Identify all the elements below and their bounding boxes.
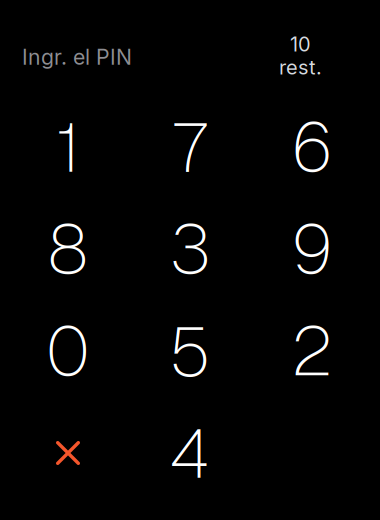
button[interactable]: 1 (7, 96, 129, 198)
staticText: 2 (291, 307, 333, 395)
button[interactable]: 5 (129, 300, 251, 402)
button[interactable]: 2 (251, 300, 373, 402)
button[interactable]: 9 (251, 198, 373, 300)
button[interactable]: 6 (251, 96, 373, 198)
staticText: 9 (291, 205, 333, 293)
button[interactable]: Delete (7, 402, 129, 504)
staticText: 1 (56, 103, 80, 191)
staticText: 6 (291, 103, 333, 191)
staticText: rest. (279, 55, 322, 79)
button[interactable]: 3 (129, 198, 251, 300)
staticText: Ingr. el PIN (22, 44, 132, 70)
staticText: 4 (169, 409, 210, 497)
staticText: 10 (290, 32, 311, 56)
button[interactable]: 0 (7, 300, 129, 402)
button[interactable]: 4 (129, 402, 251, 504)
button[interactable]: 8 (7, 198, 129, 300)
staticText: 7 (173, 103, 207, 191)
staticText: 0 (46, 307, 90, 395)
staticText: 5 (169, 307, 211, 395)
staticText: 8 (47, 205, 88, 293)
button[interactable]: 7 (129, 96, 251, 198)
staticText: 3 (169, 205, 210, 293)
